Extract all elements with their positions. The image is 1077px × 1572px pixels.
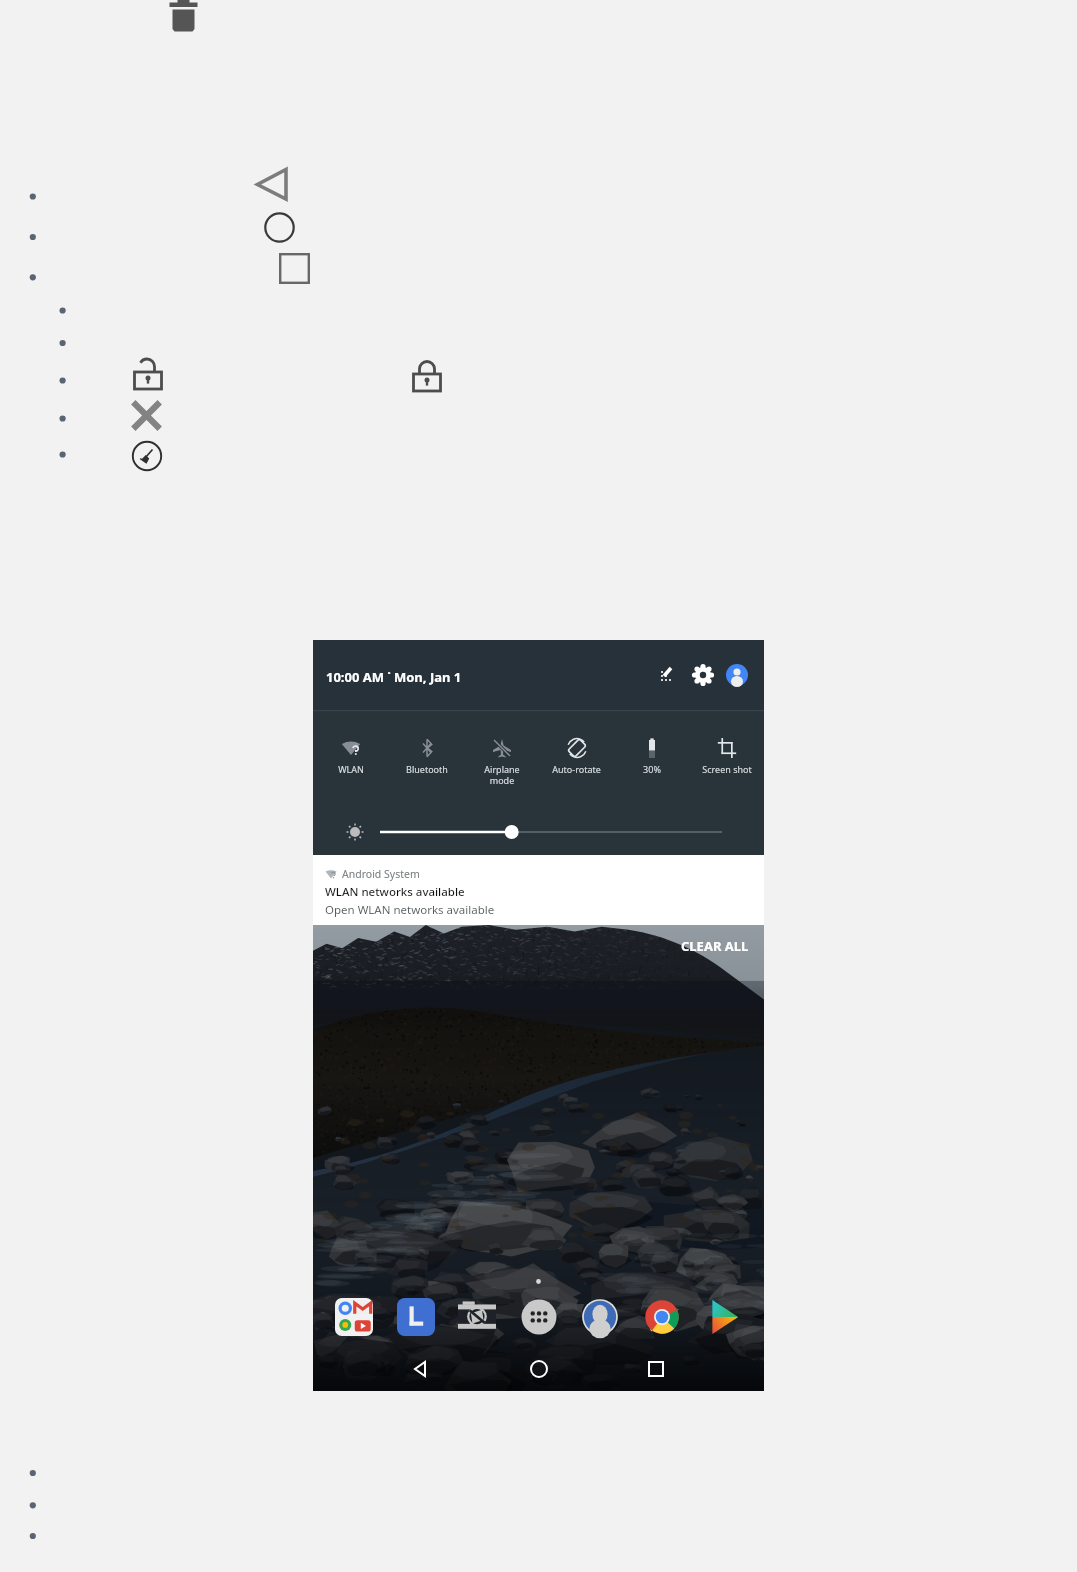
staticText: 30%: [643, 763, 661, 775]
button[interactable]: Settings: [693, 665, 713, 685]
button[interactable]: Edit tiles: [658, 664, 680, 686]
button[interactable]: Play Store: [704, 1298, 742, 1336]
button[interactable]: Clean: [132, 441, 162, 471]
button[interactable]: Airplane mode: [464, 738, 539, 786]
button[interactable]: Contacts: [581, 1298, 619, 1336]
button[interactable]: Bluetooth: [389, 738, 464, 775]
staticText: Auto-rotate: [552, 763, 601, 775]
button[interactable]: Chrome: [643, 1298, 681, 1336]
button[interactable]: Screen shot: [689, 738, 764, 775]
button[interactable]: Camera: [458, 1298, 496, 1336]
button[interactable]: Android System: [313, 855, 764, 925]
button[interactable]: WLAN: [313, 738, 389, 775]
staticText: Android System: [342, 867, 420, 881]
button[interactable]: Close: [131, 400, 162, 431]
button[interactable]: Auto-rotate: [539, 738, 614, 775]
staticText: Bluetooth: [406, 763, 448, 775]
button[interactable]: App: [397, 1298, 435, 1336]
staticText: WLAN networks available: [325, 884, 465, 900]
button[interactable]: Recents: [279, 253, 310, 284]
button[interactable]: Google folder: [335, 1298, 373, 1336]
button[interactable]: Locked: [411, 359, 443, 391]
button[interactable]: CLEAR ALL: [681, 937, 749, 955]
staticText: 10:00 AM ˙ Mon, Jan 1: [326, 668, 462, 686]
staticText: Open WLAN networks available: [325, 902, 495, 918]
button[interactable]: All apps: [520, 1298, 558, 1336]
button[interactable]: Back: [256, 168, 288, 200]
staticText: Airplane mode: [484, 763, 520, 786]
staticText: Screen shot: [702, 763, 752, 775]
button[interactable]: User profile: [726, 664, 748, 686]
button[interactable]: 30%: [614, 738, 689, 775]
staticText: WLAN: [338, 763, 364, 775]
button[interactable]: Home: [529, 1359, 549, 1379]
button[interactable]: Home: [264, 212, 295, 243]
button[interactable]: Delete: [169, 0, 198, 34]
button[interactable]: Unlocked: [132, 357, 164, 389]
button[interactable]: Back: [411, 1359, 431, 1379]
button[interactable]: Recents: [646, 1359, 666, 1379]
